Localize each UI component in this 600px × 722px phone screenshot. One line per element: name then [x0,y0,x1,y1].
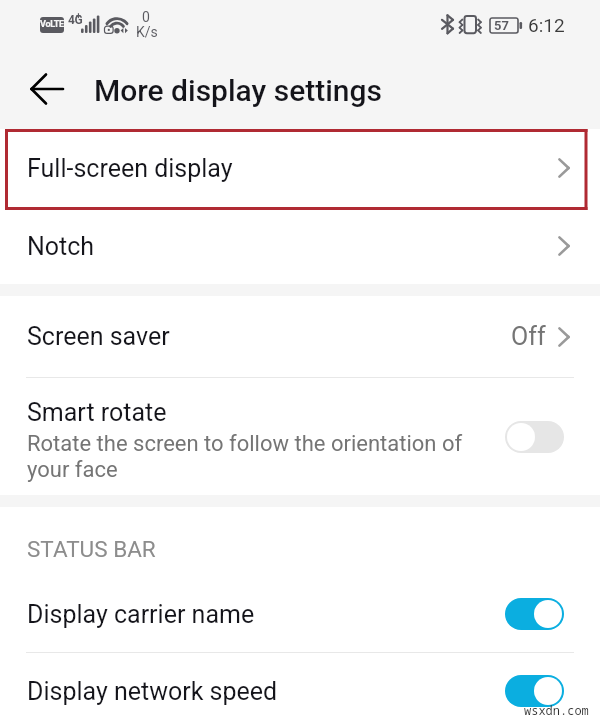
button[interactable]: Screen saver [0,296,600,377]
staticText: Display network speed [27,677,278,706]
button[interactable]: Smart rotate [0,378,600,495]
staticText: Display carrier name [27,600,255,629]
staticText: VoLTE [40,19,64,30]
button[interactable]: Display carrier name [0,576,600,652]
button[interactable]: Back [16,58,78,120]
staticText: Full-screen display [27,154,233,183]
staticText: 0 [142,9,150,25]
staticText: More display settings [94,73,382,108]
staticText: 57 [494,18,509,33]
button[interactable]: Display network speed [0,653,600,722]
button[interactable]: Switch on [505,675,564,707]
staticText: Screen saver [27,322,170,351]
button[interactable]: Full-screen display [0,129,600,207]
staticText: 6:12 [528,14,565,36]
staticText: STATUS BAR [27,536,156,562]
button[interactable]: Switch off [505,421,564,453]
staticText: wsxdn.com [524,702,589,718]
button[interactable]: Switch on [505,598,564,630]
staticText: K/s [136,24,158,40]
staticText: Rotate the screen to follow the orientat… [27,431,487,482]
staticText: Off [511,322,546,351]
staticText: Notch [27,232,95,261]
button[interactable]: Notch [0,208,600,284]
staticText: Smart rotate [27,398,167,427]
staticText: 4G [68,13,83,27]
staticText: + [76,11,81,22]
